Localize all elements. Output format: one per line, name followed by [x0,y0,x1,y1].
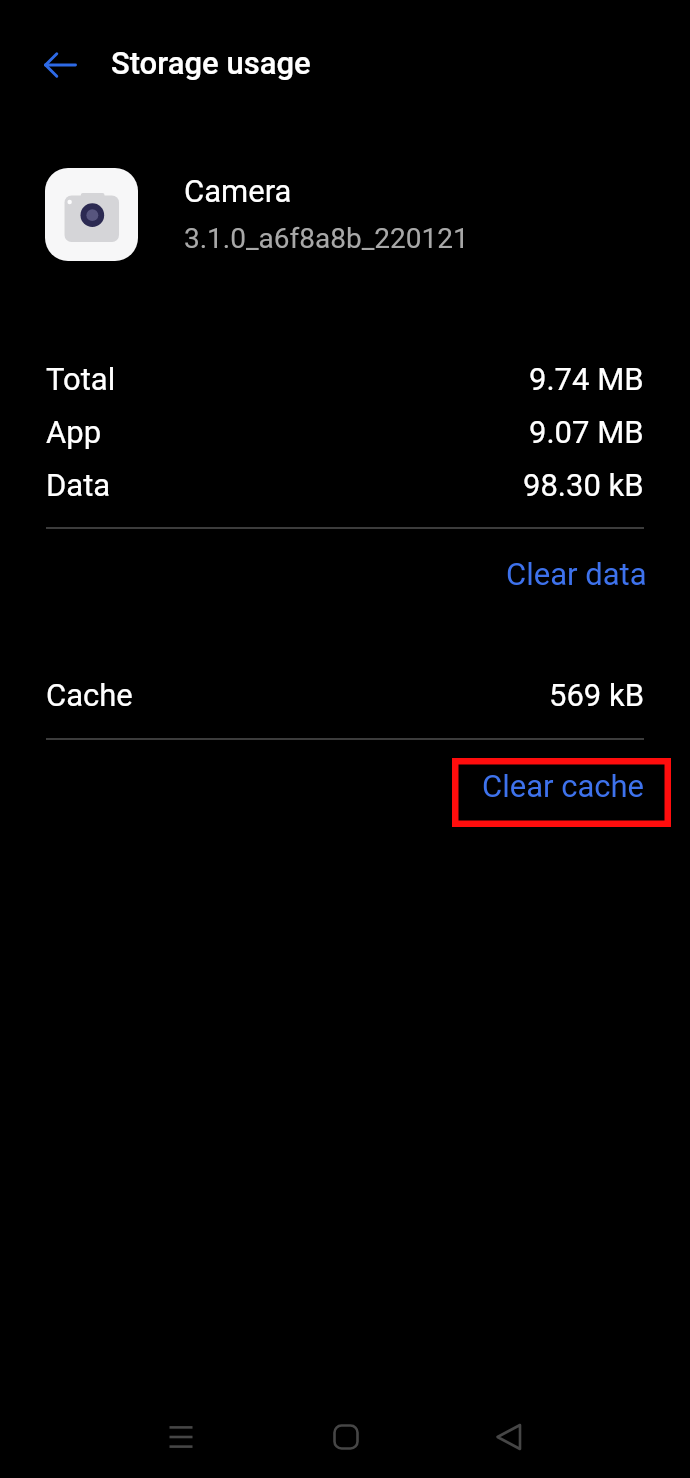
button[interactable]: Home [310,1401,382,1473]
staticText: 3.1.0_a6f8a8b_220121 [184,222,469,255]
button[interactable]: Clear data [490,546,663,602]
button[interactable]: Cache [46,673,644,717]
staticText: Cache [46,677,133,713]
staticText: Clear data [506,556,647,592]
staticText: 9.07 MB [529,414,644,450]
staticText: 9.74 MB [529,361,644,397]
staticText: 98.30 kB [523,467,644,503]
button[interactable]: Back [37,41,85,89]
button[interactable]: Back [473,1401,545,1473]
staticText: Camera [184,173,292,209]
button[interactable]: Camera [0,160,690,272]
button[interactable]: Total [46,357,644,401]
staticText: 569 kB [549,677,644,713]
button[interactable]: Clear cache [452,758,671,827]
button[interactable]: Data [46,463,644,507]
button[interactable]: Recent apps [145,1401,217,1473]
staticText: Clear cache [482,768,645,804]
staticText: Storage usage [111,45,311,81]
staticText: Total [46,361,116,397]
staticText: Data [46,467,111,503]
staticText: App [46,414,102,450]
button[interactable]: App [46,410,644,454]
